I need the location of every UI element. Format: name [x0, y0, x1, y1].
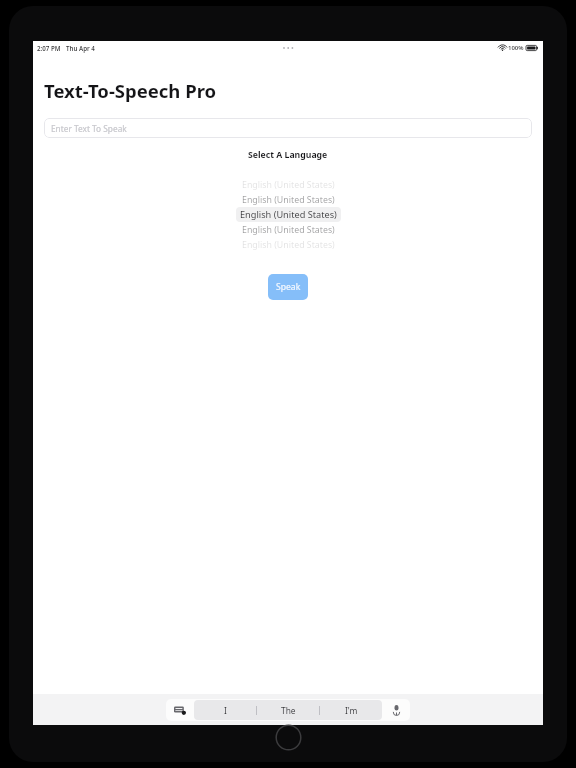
- staticText: The: [281, 705, 296, 716]
- button[interactable]: Speak: [268, 274, 308, 300]
- button[interactable]: The: [257, 700, 319, 720]
- staticText: English (United States): [240, 208, 337, 221]
- staticText: English (United States): [242, 239, 335, 251]
- button[interactable]: English (United States): [242, 222, 335, 237]
- staticText: Text-To-Speech Pro: [44, 78, 217, 103]
- button[interactable]: Home: [275, 724, 302, 751]
- button[interactable]: Dictate: [382, 699, 410, 721]
- staticText: Enter Text To Speak: [51, 123, 127, 134]
- staticText: English (United States): [242, 194, 335, 206]
- button[interactable]: English (United States): [242, 237, 335, 252]
- button[interactable]: I: [194, 700, 256, 720]
- button[interactable]: English (United States): [242, 192, 335, 207]
- staticText: I'm: [345, 705, 358, 716]
- staticText: 100%: [508, 44, 524, 52]
- staticText: I: [224, 705, 227, 716]
- staticText: English (United States): [242, 224, 335, 236]
- staticText: Thu Apr 4: [66, 44, 95, 52]
- button[interactable]: Keyboard: [166, 699, 194, 721]
- staticText: 2:07 PM: [37, 44, 61, 52]
- button[interactable]: English (United States): [240, 207, 337, 222]
- button[interactable]: English (United States): [242, 177, 335, 192]
- button[interactable]: I'm: [320, 700, 382, 720]
- staticText: English (United States): [242, 179, 335, 191]
- button[interactable]: Enter Text To Speak: [44, 118, 532, 138]
- staticText: Speak: [276, 281, 301, 293]
- staticText: Select A Language: [248, 149, 328, 161]
